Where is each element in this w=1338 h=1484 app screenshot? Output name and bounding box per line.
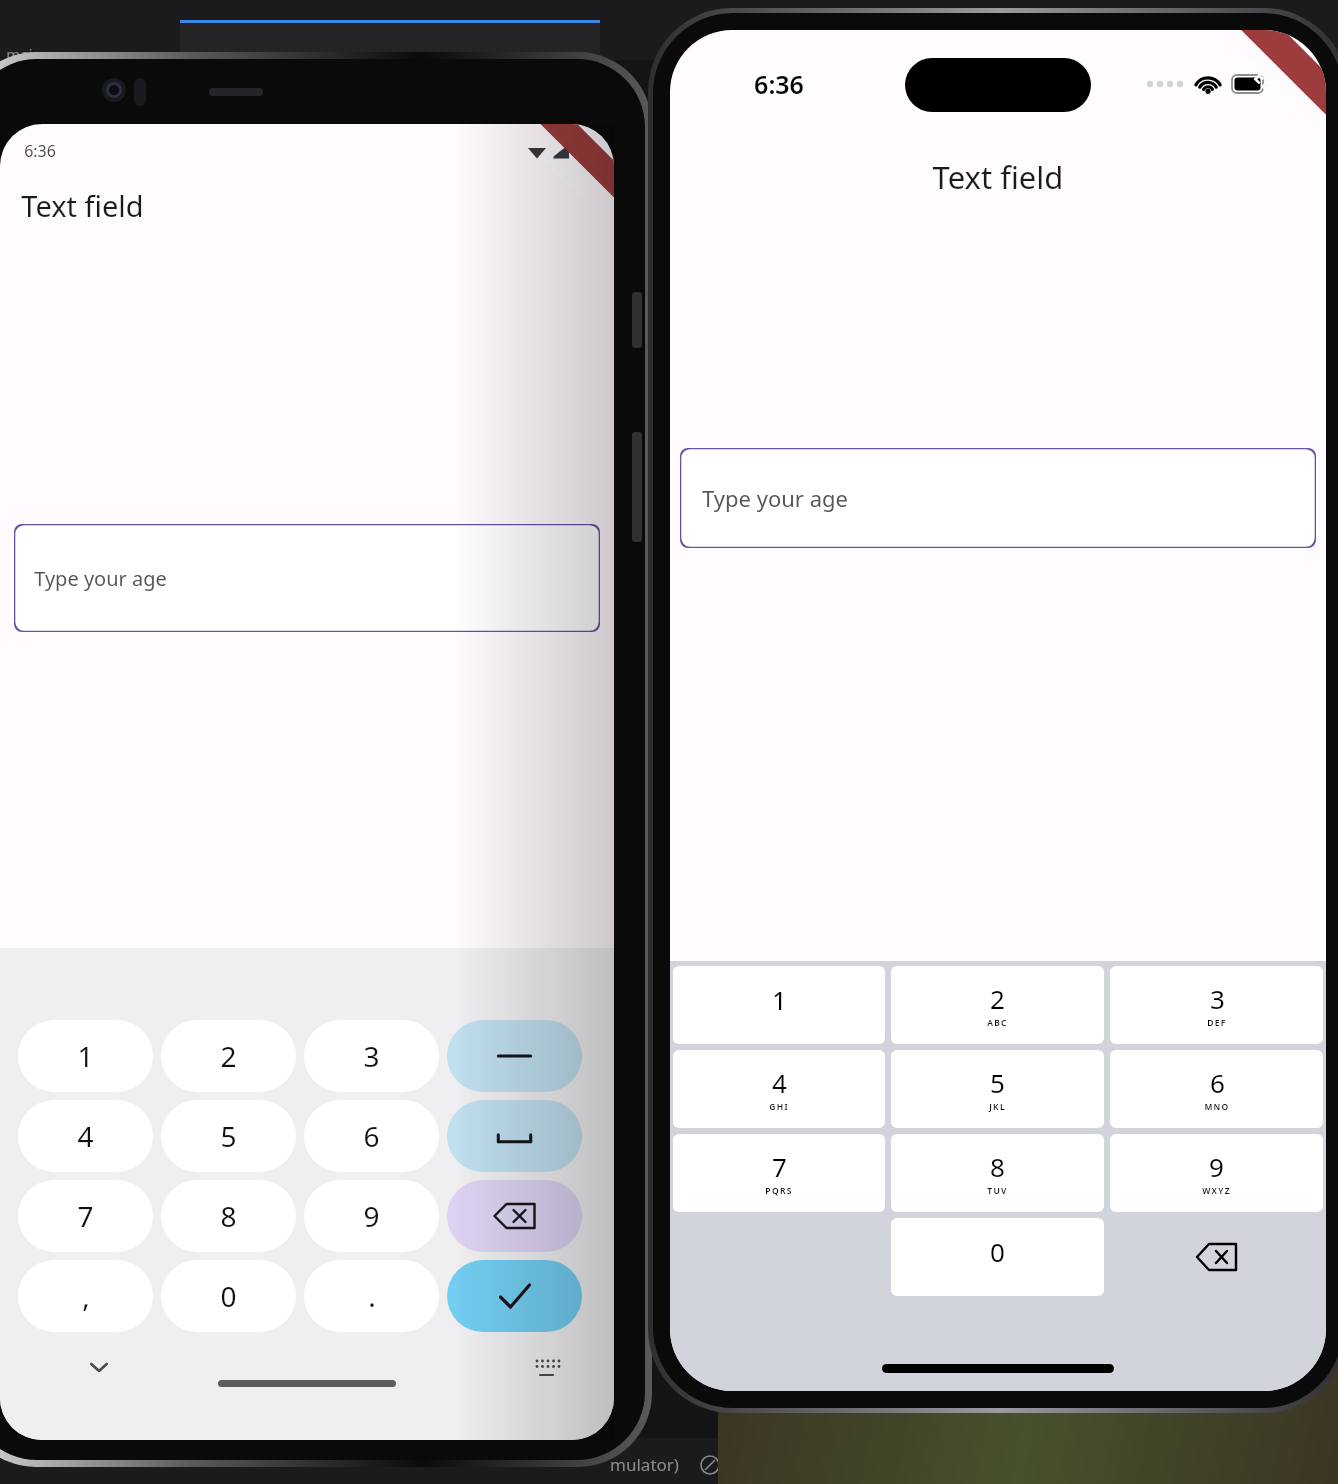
button[interactable]: 9 <box>1110 1134 1323 1212</box>
button[interactable]: Space <box>447 1100 582 1172</box>
staticText: Text field <box>670 156 1326 198</box>
staticText: 7 <box>772 1149 787 1184</box>
staticText: 5 <box>990 1065 1005 1100</box>
staticText: mulator) <box>610 1453 679 1476</box>
staticText: 9 <box>363 1197 380 1235</box>
button[interactable]: Type your age <box>680 448 1316 548</box>
staticText: 5 <box>220 1117 237 1155</box>
button[interactable]: 3 <box>1110 966 1323 1044</box>
staticText: 2 <box>220 1037 237 1075</box>
staticText: 6:36 <box>24 140 56 162</box>
button[interactable]: Type your age <box>14 524 600 632</box>
staticText: 6 <box>1210 1065 1225 1100</box>
staticText: Type your age <box>34 565 167 592</box>
button[interactable]: Backspace <box>1107 1215 1326 1299</box>
staticText: Text field <box>21 186 144 225</box>
staticText: 7 <box>77 1197 94 1235</box>
staticText: WXYZ <box>1202 1185 1231 1197</box>
staticText: 4 <box>772 1065 787 1100</box>
staticText: Type your age <box>702 483 848 513</box>
button[interactable]: 4 <box>673 1050 885 1128</box>
staticText: 0 <box>220 1277 237 1315</box>
staticText: 3 <box>1210 981 1225 1016</box>
staticText: main <box>6 44 42 64</box>
staticText: ABC <box>987 1017 1008 1029</box>
staticText: 8 <box>220 1197 237 1235</box>
button[interactable]: 8 <box>161 1180 296 1252</box>
button[interactable]: 2 <box>161 1020 296 1092</box>
staticText: 0 <box>990 1234 1005 1269</box>
button[interactable]: 7 <box>673 1134 885 1212</box>
staticText: 1 <box>77 1037 94 1075</box>
button[interactable]: 7 <box>18 1180 153 1252</box>
staticText: 2 <box>990 981 1005 1016</box>
staticText: 6 <box>363 1117 380 1155</box>
staticText: DEBUG <box>537 146 593 202</box>
staticText: GHI <box>769 1101 789 1113</box>
staticText: DEBUG <box>1239 55 1302 118</box>
button[interactable]: 1 <box>18 1020 153 1092</box>
staticText: . <box>368 1277 376 1315</box>
button[interactable]: 5 <box>891 1050 1104 1128</box>
button[interactable]: Backspace <box>447 1180 582 1252</box>
button[interactable]: , <box>18 1260 153 1332</box>
button[interactable]: 0 <box>161 1260 296 1332</box>
button[interactable]: 2 <box>891 966 1104 1044</box>
button[interactable]: 5 <box>161 1100 296 1172</box>
staticText: 6:36 <box>754 67 804 101</box>
button[interactable]: . <box>304 1260 439 1332</box>
staticText: 8 <box>990 1149 1005 1184</box>
button[interactable]: 3 <box>304 1020 439 1092</box>
staticText: 9 <box>1209 1149 1224 1184</box>
staticText: , <box>82 1277 90 1315</box>
button[interactable]: Done <box>447 1260 582 1332</box>
staticText: 1 <box>772 982 787 1017</box>
button[interactable]: 1 <box>673 966 885 1044</box>
staticText: JKL <box>989 1101 1006 1113</box>
button[interactable]: 6 <box>304 1100 439 1172</box>
staticText: PQRS <box>765 1185 793 1197</box>
staticText: 3 <box>363 1037 380 1075</box>
staticText: 4 <box>77 1117 94 1155</box>
button[interactable]: 9 <box>304 1180 439 1252</box>
button[interactable]: 8 <box>891 1134 1104 1212</box>
button[interactable]: 4 <box>18 1100 153 1172</box>
staticText: TUV <box>987 1185 1008 1197</box>
button[interactable]: 0 <box>891 1218 1104 1296</box>
button[interactable]: 6 <box>1110 1050 1323 1128</box>
staticText: MNO <box>1204 1101 1230 1113</box>
button[interactable]: Minus <box>447 1020 582 1092</box>
staticText: DEF <box>1207 1017 1227 1029</box>
